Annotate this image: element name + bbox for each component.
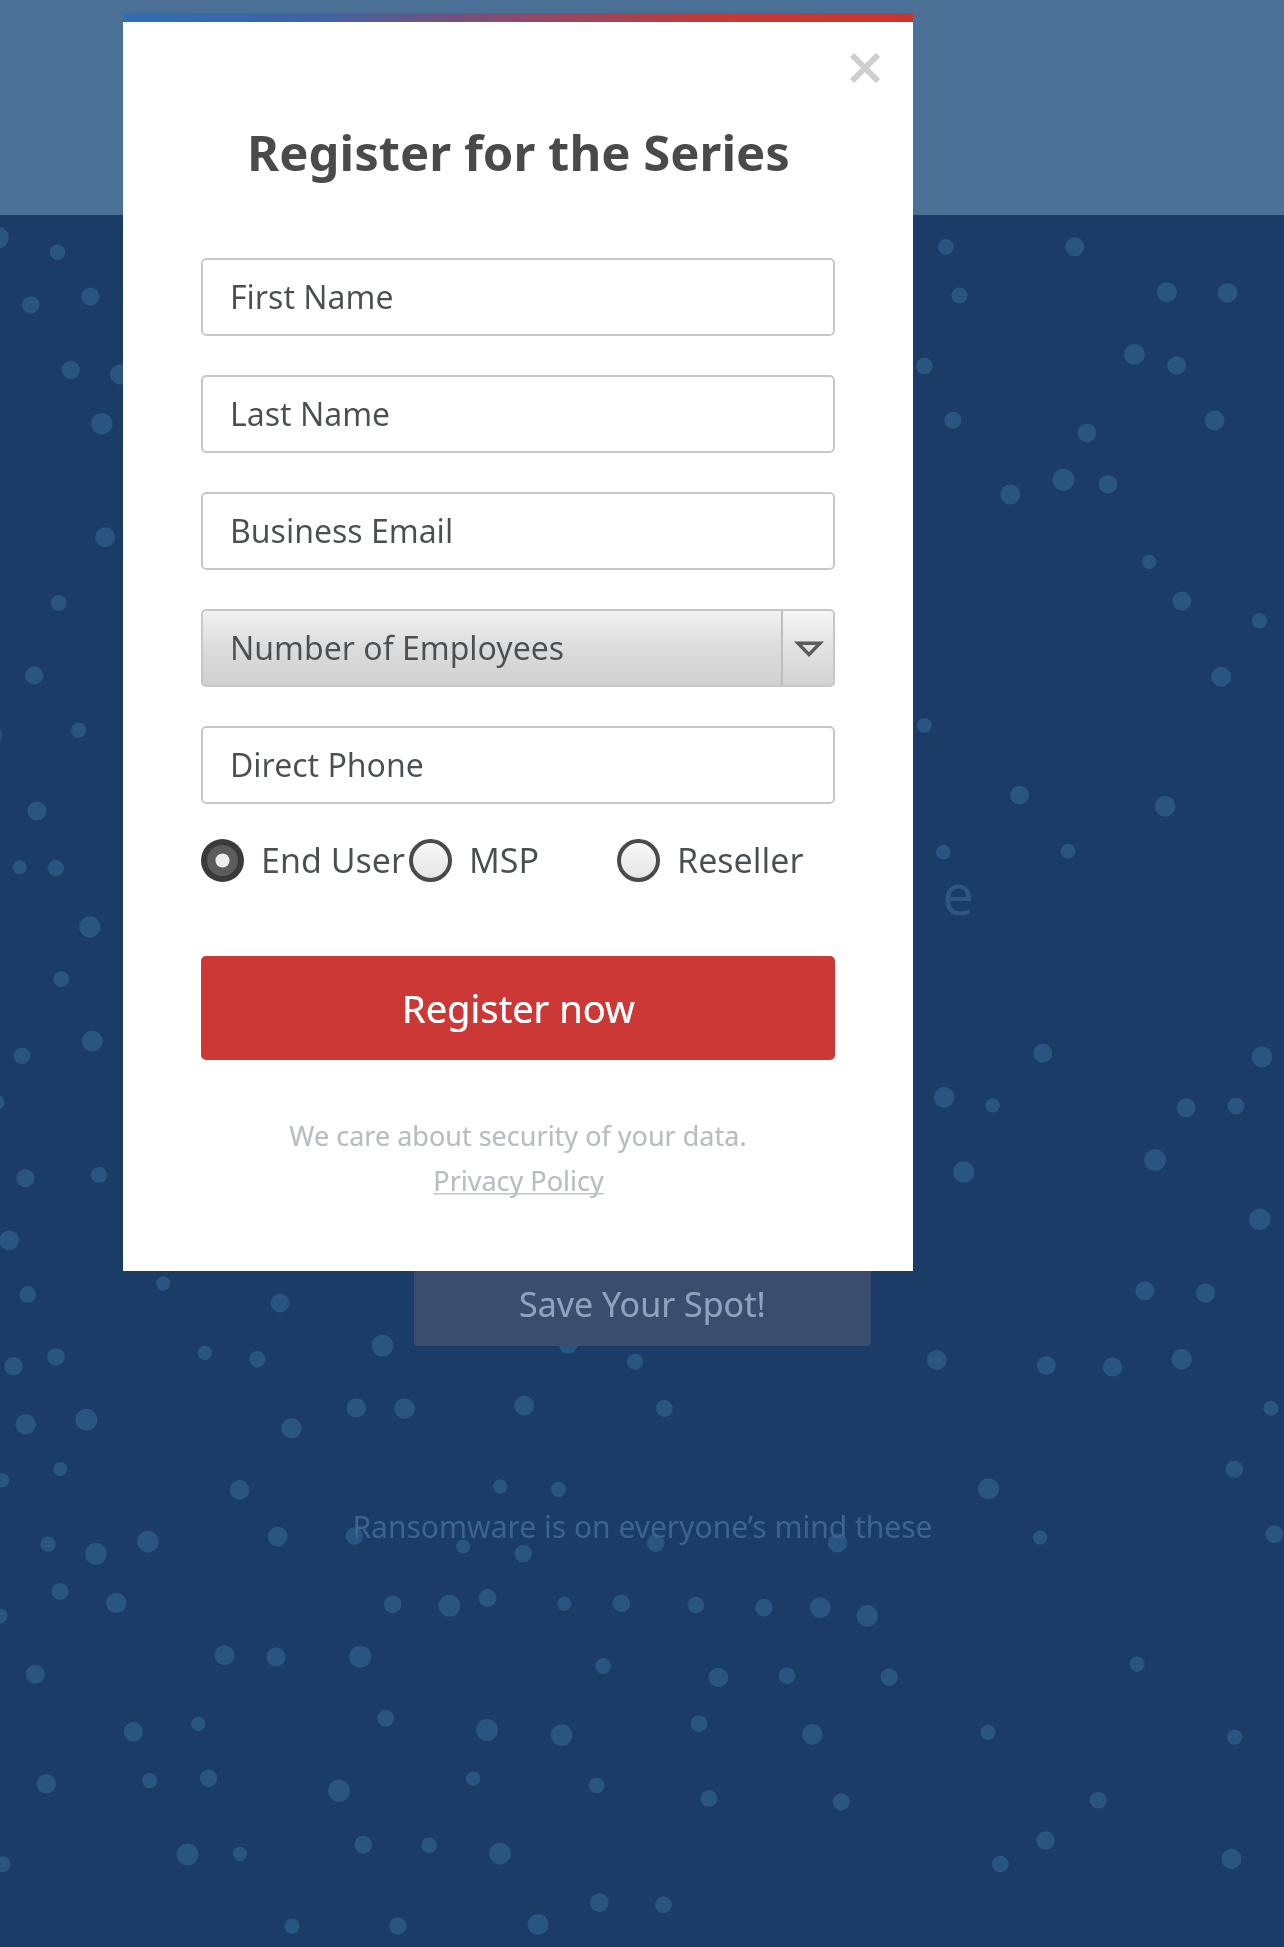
staticText: Register for the Series <box>247 119 790 186</box>
button[interactable]: Reseller <box>617 837 835 883</box>
staticText: Reseller <box>677 837 804 883</box>
staticText: Number of Employees <box>230 626 565 670</box>
staticText: Business Email <box>230 509 454 553</box>
button[interactable]: End User <box>201 837 409 883</box>
button[interactable]: MSP <box>409 837 617 883</box>
staticText: Ransomware is on everyone’s mind these <box>352 1506 933 1547</box>
button[interactable]: Last Name <box>201 375 835 453</box>
button[interactable]: Privacy Policy <box>433 1162 604 1199</box>
staticText: Register now <box>402 982 635 1034</box>
staticText: MSP <box>469 837 540 883</box>
button[interactable]: Business Email <box>201 492 835 570</box>
staticText: Direct Phone <box>230 743 424 787</box>
staticText: Save Your Spot! <box>519 1281 766 1327</box>
staticText: Last Name <box>230 392 391 436</box>
staticText: First Name <box>230 275 394 319</box>
staticText: P e <box>311 855 974 931</box>
button[interactable]: Register now <box>201 956 835 1060</box>
staticText: End User <box>261 837 406 883</box>
button[interactable]: Close <box>841 44 889 92</box>
button[interactable]: Direct Phone <box>201 726 835 804</box>
button[interactable]: Number of Employees dropdown <box>201 609 835 687</box>
staticText: Privacy Policy <box>433 1162 604 1199</box>
button[interactable]: First Name <box>201 258 835 336</box>
button[interactable]: Save Your Spot! <box>414 1261 871 1346</box>
staticText: We care about security of your data. <box>289 1117 747 1154</box>
